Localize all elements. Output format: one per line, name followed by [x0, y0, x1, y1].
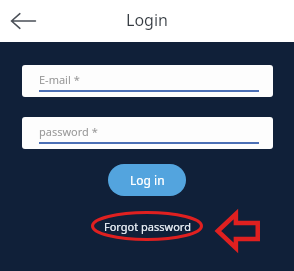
- staticText: Forgot password: [104, 219, 191, 234]
- staticText: password *: [39, 124, 98, 139]
- button[interactable]: password *: [22, 117, 273, 149]
- other: Annotation arrow: [217, 214, 259, 248]
- button[interactable]: Back: [6, 4, 40, 38]
- staticText: Login: [126, 9, 168, 31]
- button[interactable]: E-mail *: [22, 65, 273, 97]
- staticText: E-mail *: [39, 72, 80, 87]
- button[interactable]: Log in: [108, 164, 186, 196]
- button[interactable]: Forgot password: [91, 211, 203, 241]
- staticText: Log in: [130, 172, 165, 188]
